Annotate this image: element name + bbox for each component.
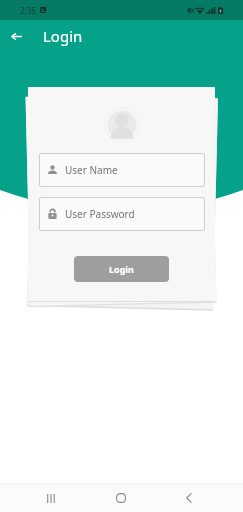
button[interactable]: User Name [39, 153, 205, 187]
staticText: User Password [65, 207, 135, 221]
button[interactable]: Home [106, 484, 135, 512]
button[interactable]: Login [74, 256, 169, 282]
staticText: User Name [65, 163, 118, 177]
staticText: 2:35 [20, 5, 36, 16]
button[interactable]: User Password [39, 197, 205, 231]
button[interactable]: Recent apps [36, 484, 65, 512]
staticText: Login [109, 263, 134, 275]
button[interactable]: Back [0, 20, 32, 52]
staticText: Login [43, 26, 83, 46]
button[interactable]: Back [174, 484, 203, 512]
